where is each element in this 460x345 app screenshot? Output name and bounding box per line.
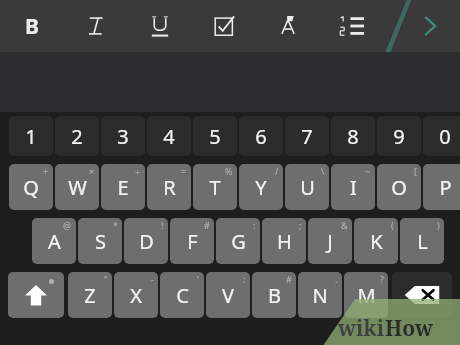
staticText: 7 bbox=[301, 123, 313, 150]
button[interactable]: G bbox=[216, 218, 260, 264]
staticText: V bbox=[222, 282, 234, 309]
button[interactable]: 5 bbox=[193, 116, 237, 156]
button[interactable]: Backspace bbox=[392, 272, 452, 318]
staticText: S bbox=[95, 228, 106, 255]
staticText: # bbox=[286, 273, 292, 285]
staticText: / bbox=[275, 165, 279, 177]
staticText: B bbox=[268, 282, 281, 309]
staticText: & bbox=[341, 219, 348, 231]
staticText: 6 bbox=[255, 123, 267, 150]
button[interactable]: S bbox=[78, 218, 122, 264]
staticText: " bbox=[104, 273, 108, 285]
button[interactable]: Bold bbox=[0, 0, 64, 52]
staticText: Z bbox=[84, 282, 96, 309]
staticText: ~ bbox=[365, 165, 371, 177]
button[interactable]: I bbox=[331, 164, 375, 210]
staticText: 0 bbox=[439, 123, 451, 150]
button[interactable]: X bbox=[114, 272, 158, 318]
button[interactable]: F bbox=[170, 218, 214, 264]
staticText: @ bbox=[63, 219, 72, 231]
button[interactable]: H bbox=[262, 218, 306, 264]
button[interactable]: V bbox=[206, 272, 250, 318]
button[interactable]: E bbox=[101, 164, 145, 210]
staticText: R bbox=[163, 174, 176, 201]
button[interactable]: D bbox=[124, 218, 168, 264]
staticText: ÷ bbox=[135, 165, 141, 177]
button[interactable]: B bbox=[252, 272, 296, 318]
button[interactable]: P bbox=[423, 164, 460, 210]
staticText: 8 bbox=[347, 123, 359, 150]
staticText: ! bbox=[161, 219, 164, 231]
button[interactable]: 2 bbox=[55, 116, 99, 156]
staticText: Y bbox=[255, 174, 267, 201]
staticText: L bbox=[417, 228, 428, 255]
button[interactable]: Italic bbox=[64, 0, 128, 52]
button[interactable]: 9 bbox=[377, 116, 421, 156]
button[interactable]: Numbered list bbox=[320, 0, 384, 52]
button[interactable]: W bbox=[55, 164, 99, 210]
staticText: H bbox=[277, 228, 292, 255]
button[interactable]: 6 bbox=[239, 116, 283, 156]
staticText: = bbox=[181, 165, 187, 177]
staticText: T bbox=[209, 174, 221, 201]
staticText: F bbox=[187, 228, 198, 255]
staticText: How bbox=[385, 314, 434, 343]
button[interactable]: 3 bbox=[101, 116, 145, 156]
staticText: × bbox=[89, 165, 95, 177]
button[interactable]: Next bbox=[400, 0, 460, 52]
staticText: K bbox=[370, 228, 383, 255]
button[interactable]: O bbox=[377, 164, 421, 210]
staticText: - bbox=[151, 273, 154, 285]
button[interactable]: M bbox=[344, 272, 388, 318]
staticText: # bbox=[204, 219, 210, 231]
staticText: N bbox=[312, 282, 328, 309]
staticText: % bbox=[225, 165, 233, 177]
button[interactable]: 0 bbox=[423, 116, 460, 156]
button[interactable]: A bbox=[32, 218, 76, 264]
button[interactable]: 8 bbox=[331, 116, 375, 156]
button[interactable]: J bbox=[308, 218, 352, 264]
staticText: ' bbox=[197, 273, 200, 285]
staticText: ) bbox=[437, 219, 440, 231]
staticText: U bbox=[300, 174, 315, 201]
button[interactable]: Z bbox=[68, 272, 112, 318]
button[interactable]: Checklist bbox=[192, 0, 256, 52]
button[interactable]: Underline bbox=[128, 0, 192, 52]
button[interactable]: L bbox=[400, 218, 444, 264]
staticText: 3 bbox=[117, 123, 129, 150]
staticText: + bbox=[43, 165, 49, 177]
button[interactable]: 1 bbox=[9, 116, 53, 156]
button[interactable]: C bbox=[160, 272, 204, 318]
staticText: C bbox=[176, 282, 189, 309]
staticText: [ bbox=[414, 165, 417, 177]
staticText: 1 bbox=[25, 123, 37, 150]
button[interactable]: K bbox=[354, 218, 398, 264]
staticText: \ bbox=[321, 165, 325, 177]
staticText: ; bbox=[299, 219, 302, 231]
staticText: I bbox=[350, 174, 357, 201]
staticText: D bbox=[139, 228, 154, 255]
button[interactable]: Q bbox=[9, 164, 53, 210]
staticText: * bbox=[113, 219, 118, 231]
button[interactable]: N bbox=[298, 272, 342, 318]
staticText: 4 bbox=[163, 123, 175, 150]
staticText: P bbox=[439, 174, 452, 201]
staticText: E bbox=[117, 174, 129, 201]
staticText: . bbox=[335, 273, 338, 285]
button[interactable]: R bbox=[147, 164, 191, 210]
button[interactable]: Y bbox=[239, 164, 283, 210]
staticText: ( bbox=[391, 219, 394, 231]
button[interactable]: T bbox=[193, 164, 237, 210]
staticText: : bbox=[253, 219, 256, 231]
staticText: G bbox=[231, 228, 246, 255]
staticText: W bbox=[68, 174, 87, 201]
staticText: wiki bbox=[338, 314, 385, 343]
staticText: ? bbox=[380, 273, 384, 285]
button[interactable]: Shift bbox=[8, 272, 64, 318]
button[interactable]: U bbox=[285, 164, 329, 210]
staticText: M bbox=[357, 282, 376, 309]
staticText: 2 bbox=[71, 123, 83, 150]
button[interactable]: 4 bbox=[147, 116, 191, 156]
button[interactable]: 7 bbox=[285, 116, 329, 156]
button[interactable]: Text style bbox=[256, 0, 320, 52]
